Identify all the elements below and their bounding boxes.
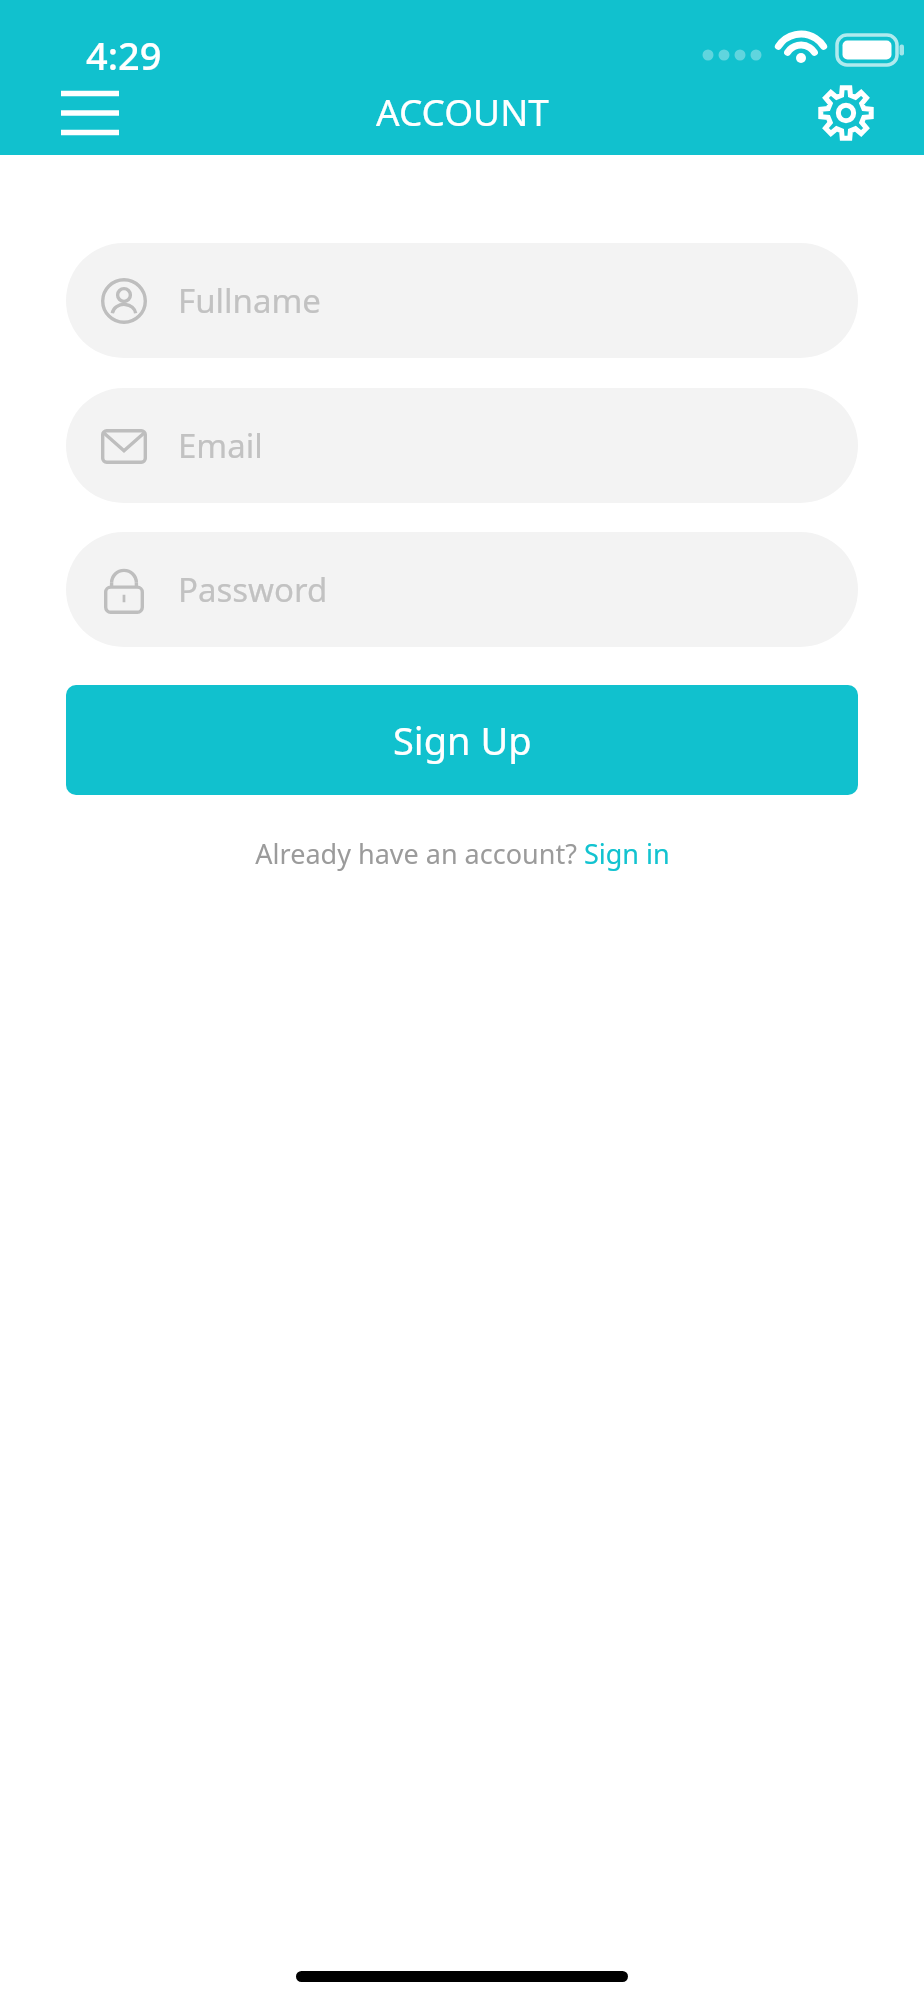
button[interactable]: Already have an account? Sign in	[0, 825, 924, 881]
staticText: Fullname	[178, 278, 321, 323]
staticText: Password	[178, 567, 328, 612]
staticText: Already have an account? Sign in	[255, 835, 670, 872]
button[interactable]: Password	[66, 532, 858, 647]
button[interactable]: Fullname	[66, 243, 858, 358]
button[interactable]: Settings	[804, 71, 888, 155]
staticText: Email	[178, 423, 263, 468]
staticText: Sign Up	[393, 714, 532, 766]
button[interactable]: Sign Up	[66, 685, 858, 795]
staticText: ACCOUNT	[376, 86, 549, 136]
button[interactable]: Menu	[42, 75, 138, 151]
staticText: 4:29	[86, 29, 162, 81]
button[interactable]: Email	[66, 388, 858, 503]
